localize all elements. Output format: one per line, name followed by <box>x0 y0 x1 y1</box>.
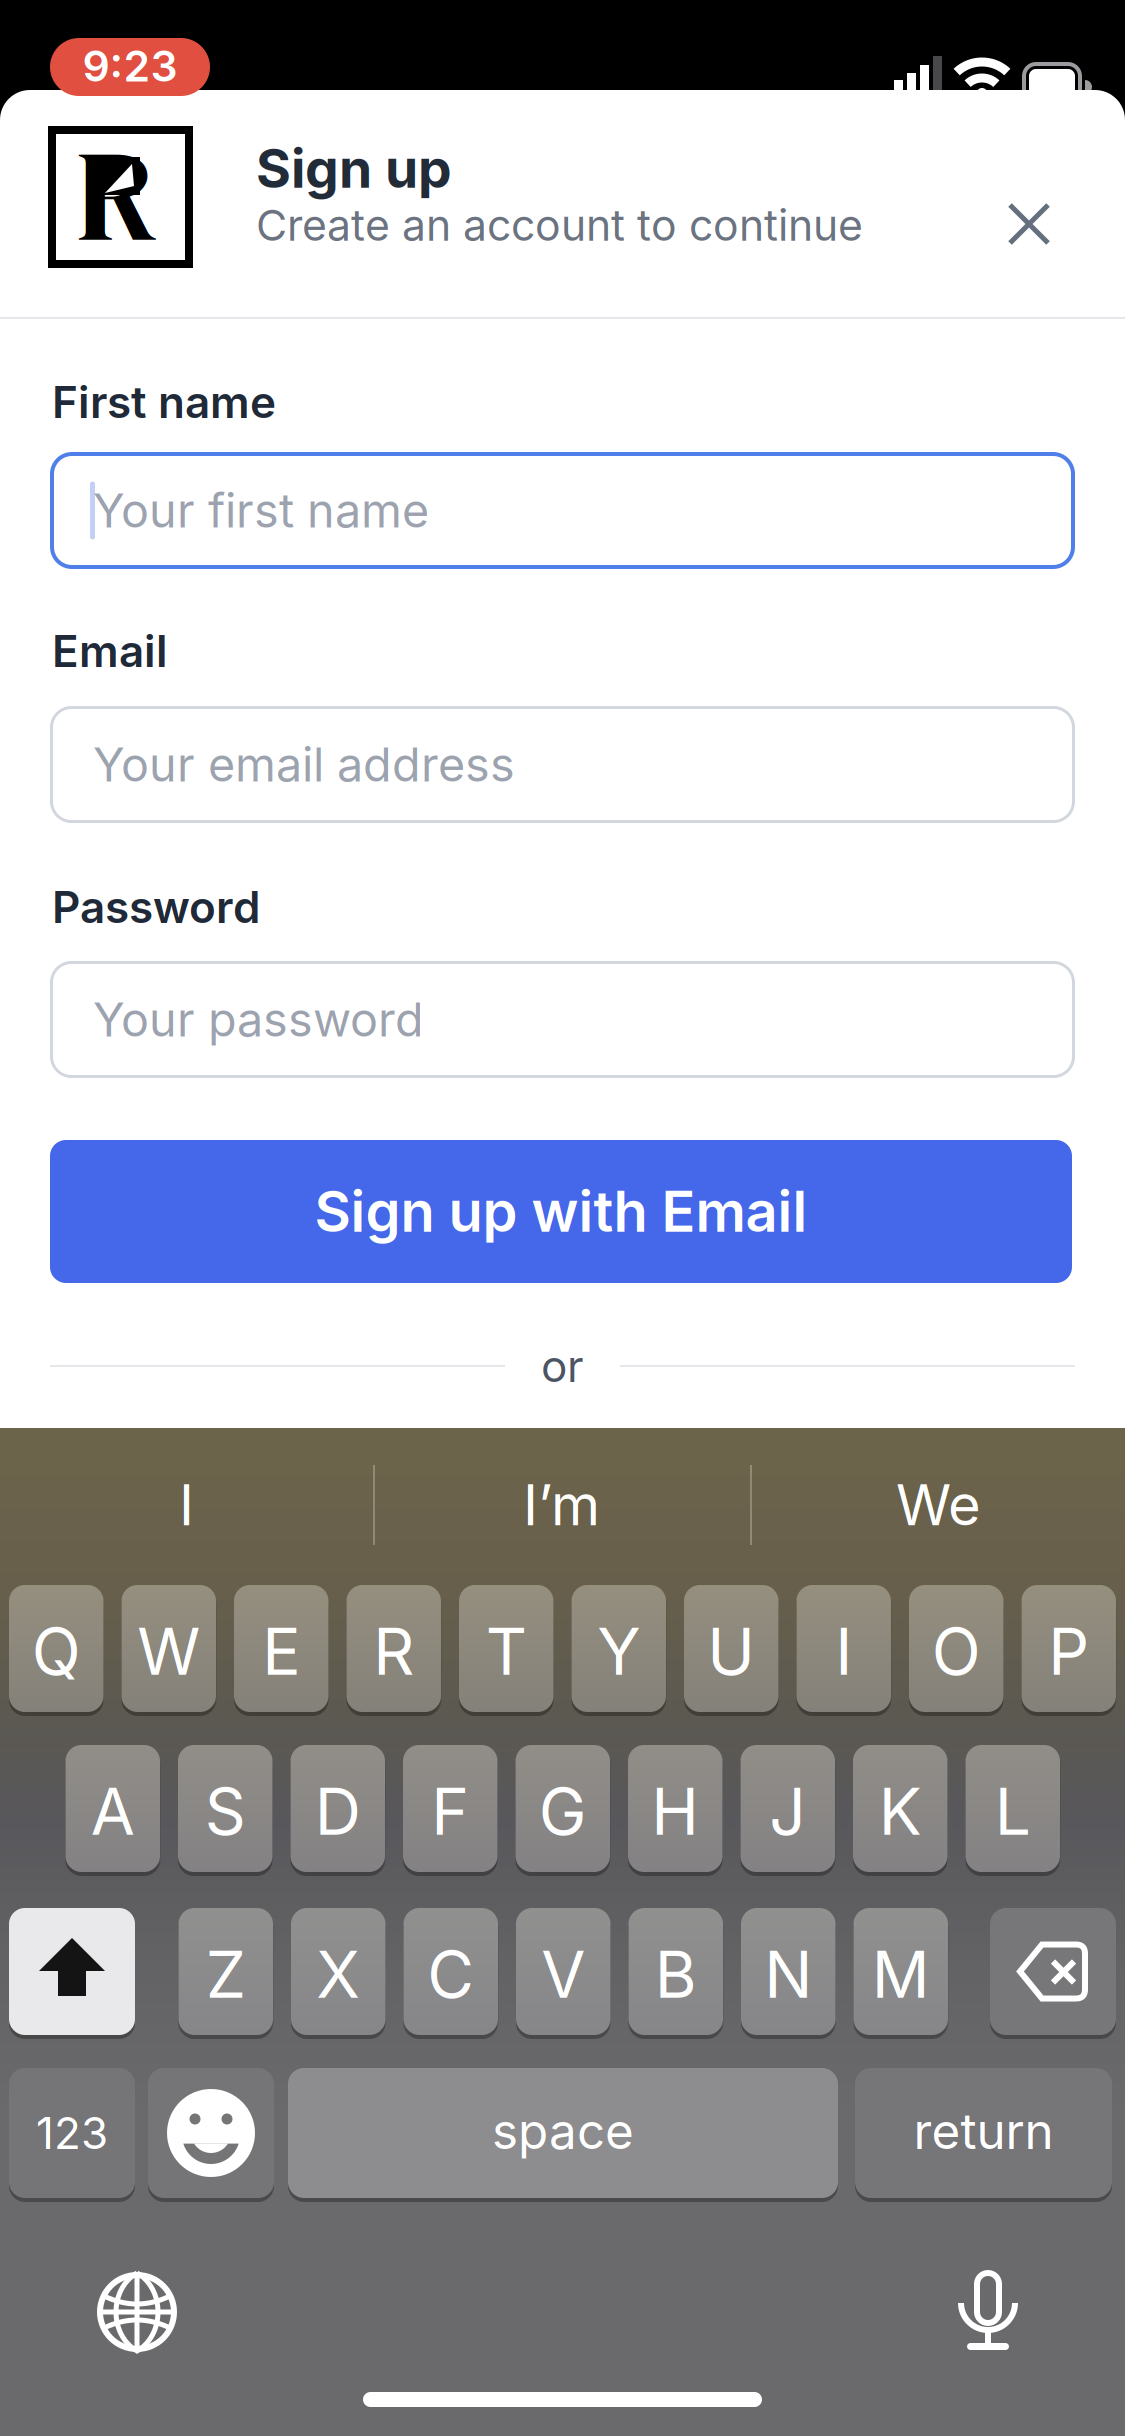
button[interactable]: M <box>853 1908 948 2035</box>
button[interactable]: return <box>855 2068 1112 2198</box>
staticText: Z <box>206 1937 246 2012</box>
staticText: Y <box>597 1614 640 1689</box>
button[interactable]: 123 <box>9 2068 135 2198</box>
staticText: B <box>655 1937 697 2012</box>
button[interactable]: C <box>403 1908 498 2035</box>
staticText: I <box>179 1472 194 1538</box>
staticText: W <box>137 1614 200 1689</box>
button[interactable]: E <box>234 1585 328 1712</box>
button[interactable]: B <box>628 1908 723 2035</box>
button[interactable]: F <box>403 1745 497 1872</box>
button[interactable]: V <box>516 1908 610 2035</box>
button[interactable]: I <box>796 1585 891 1712</box>
button[interactable]: A <box>65 1745 160 1872</box>
staticText: T <box>486 1614 527 1689</box>
button[interactable]: Delete <box>990 1908 1116 2035</box>
staticText: M <box>872 1937 930 2012</box>
staticText: or <box>541 1340 584 1392</box>
button[interactable]: Your password <box>50 961 1075 1078</box>
staticText: Q <box>32 1614 81 1689</box>
staticText: V <box>541 1937 585 2012</box>
button[interactable]: Suggestion I’m <box>375 1430 748 1580</box>
button[interactable]: Emoji <box>148 2068 274 2198</box>
staticText: Create an account to continue <box>256 200 863 250</box>
button[interactable]: Suggestion We <box>752 1430 1125 1580</box>
button[interactable]: X <box>291 1908 385 2035</box>
staticText: J <box>769 1774 806 1849</box>
button[interactable]: D <box>290 1745 385 1872</box>
button[interactable]: R <box>346 1585 441 1712</box>
staticText: Your password <box>93 992 424 1047</box>
button[interactable]: Your email address <box>50 706 1075 823</box>
staticText: R <box>76 106 157 284</box>
button[interactable]: K <box>853 1745 947 1872</box>
button[interactable]: Y <box>571 1585 666 1712</box>
staticText: H <box>651 1774 699 1849</box>
staticText: We <box>896 1472 981 1538</box>
button[interactable]: First name text field <box>50 452 1075 569</box>
button[interactable]: O <box>909 1585 1003 1712</box>
button[interactable]: N <box>741 1908 835 2035</box>
staticText: First name <box>52 376 276 428</box>
button[interactable]: T <box>459 1585 553 1712</box>
staticText: 123 <box>36 2107 108 2159</box>
staticText: C <box>427 1937 474 2012</box>
staticText: L <box>995 1774 1031 1849</box>
button[interactable]: Suggestion I <box>0 1430 373 1580</box>
staticText: Your email address <box>93 737 515 792</box>
button[interactable]: space <box>288 2068 838 2198</box>
staticText: O <box>932 1614 981 1689</box>
staticText: S <box>205 1774 246 1849</box>
button[interactable]: W <box>121 1585 216 1712</box>
button[interactable]: Next keyboard <box>95 2270 179 2354</box>
staticText: P <box>1048 1614 1089 1689</box>
button[interactable]: J <box>740 1745 835 1872</box>
staticText: I’m <box>523 1472 600 1538</box>
staticText: N <box>764 1937 812 2012</box>
button[interactable]: Close <box>990 185 1068 263</box>
staticText: return <box>913 2102 1053 2160</box>
button[interactable]: U <box>684 1585 778 1712</box>
staticText: space <box>492 2102 634 2160</box>
button[interactable]: Sign up with Email <box>50 1140 1072 1283</box>
staticText: Your first name <box>93 483 429 538</box>
staticText: Email <box>52 625 168 677</box>
staticText: G <box>539 1774 587 1849</box>
staticText: A <box>91 1774 135 1849</box>
staticText: X <box>316 1937 360 2012</box>
button[interactable]: S <box>178 1745 272 1872</box>
staticText: Sign up <box>256 137 452 200</box>
staticText: Password <box>52 881 260 933</box>
button[interactable]: Recording indicator, 9:23 <box>50 38 210 96</box>
button[interactable]: H <box>628 1745 722 1872</box>
button[interactable]: P <box>1021 1585 1116 1712</box>
staticText: F <box>431 1774 469 1849</box>
button[interactable]: Z <box>178 1908 273 2035</box>
staticText: R <box>373 1614 414 1689</box>
staticText: K <box>879 1774 922 1849</box>
button[interactable]: L <box>965 1745 1060 1872</box>
staticText: D <box>315 1774 361 1849</box>
button[interactable]: Shift <box>9 1908 135 2035</box>
staticText: Sign up with Email <box>314 1178 807 1245</box>
button[interactable]: Dictate <box>958 2270 1018 2352</box>
button[interactable]: G <box>515 1745 610 1872</box>
staticText: E <box>262 1614 300 1689</box>
staticText: I <box>835 1614 852 1689</box>
staticText: 9:23 <box>82 41 177 91</box>
staticText: U <box>707 1614 755 1689</box>
button[interactable]: Q <box>9 1585 103 1712</box>
